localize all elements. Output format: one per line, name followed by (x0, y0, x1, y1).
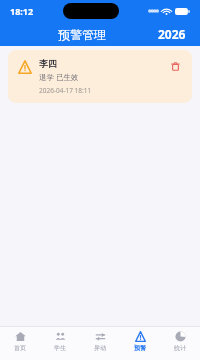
staticText: 预警 (134, 344, 146, 352)
staticText: 18:12 (10, 5, 34, 17)
button[interactable]: 预警 (120, 326, 160, 360)
staticText: 统计 (174, 344, 186, 352)
staticText: 异动 (94, 344, 106, 352)
staticText: 预警管理 (58, 27, 106, 42)
button[interactable]: 统计 (160, 326, 200, 360)
button[interactable]: 首页 (0, 326, 40, 360)
button[interactable]: Delete (169, 60, 182, 73)
button[interactable]: 2026 (154, 25, 190, 43)
staticText: 退学 已生效 (39, 72, 79, 82)
button[interactable]: 异动 (80, 326, 120, 360)
staticText: 2026-04-17 18:11 (39, 86, 92, 95)
staticText: 李四 (39, 58, 57, 69)
staticText: 2026 (158, 26, 186, 42)
button[interactable]: 学生 (40, 326, 80, 360)
staticText: 学生 (54, 344, 66, 352)
staticText: 首页 (14, 344, 26, 352)
button[interactable]: 李四 (8, 50, 192, 103)
